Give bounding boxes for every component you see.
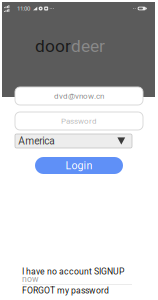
staticText: America bbox=[18, 135, 55, 147]
staticText: dvd@vnow.cn bbox=[54, 91, 104, 101]
button[interactable]: Login bbox=[35, 157, 123, 174]
staticText: now bbox=[22, 274, 39, 284]
button[interactable]: I have no account SIGNUP bbox=[22, 267, 132, 276]
staticText: FORGOT my password bbox=[22, 285, 109, 296]
staticText: deer bbox=[71, 36, 105, 56]
staticText: Login bbox=[65, 159, 92, 172]
button[interactable]: now bbox=[22, 274, 132, 283]
staticText: 11:00 bbox=[17, 5, 30, 12]
staticText: door bbox=[35, 36, 71, 56]
staticText: Password bbox=[61, 116, 97, 126]
staticText: I have no account SIGNUP bbox=[22, 266, 124, 277]
button[interactable]: America bbox=[15, 134, 132, 148]
button[interactable]: FORGOT my password bbox=[22, 286, 132, 295]
